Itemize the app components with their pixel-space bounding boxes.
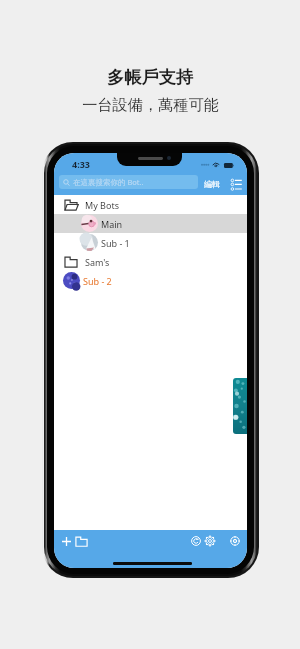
button[interactable]: Locate: [230, 536, 240, 546]
button[interactable]: Sync: [191, 536, 201, 546]
button[interactable]: Sub - 1: [54, 233, 247, 252]
button[interactable]: Add bot: [62, 537, 71, 546]
staticText: 一台設備，萬種可能: [82, 95, 219, 114]
button[interactable]: 編輯: [202, 179, 222, 189]
staticText: Sub - 1: [101, 237, 130, 249]
staticText: Sam's: [85, 256, 110, 268]
staticText: 多帳戶支持: [107, 66, 193, 88]
button[interactable]: Main: [54, 214, 247, 233]
button[interactable]: 在這裏搜索你的 Bot..: [59, 175, 198, 189]
staticText: 4:33: [72, 158, 90, 170]
staticText: Main: [101, 218, 123, 230]
staticText: 在這裏搜索你的 Bot..: [73, 177, 144, 187]
button[interactable]: List view: [231, 178, 243, 190]
staticText: 編輯: [204, 179, 220, 189]
button[interactable]: Settings: [205, 536, 215, 546]
button[interactable]: New folder: [75, 536, 88, 547]
button[interactable]: Sam's: [54, 252, 247, 271]
button[interactable]: My Bots: [54, 195, 247, 214]
button[interactable]: Sub - 2: [54, 271, 247, 290]
staticText: My Bots: [85, 199, 119, 211]
staticText: Sub - 2: [83, 275, 112, 287]
